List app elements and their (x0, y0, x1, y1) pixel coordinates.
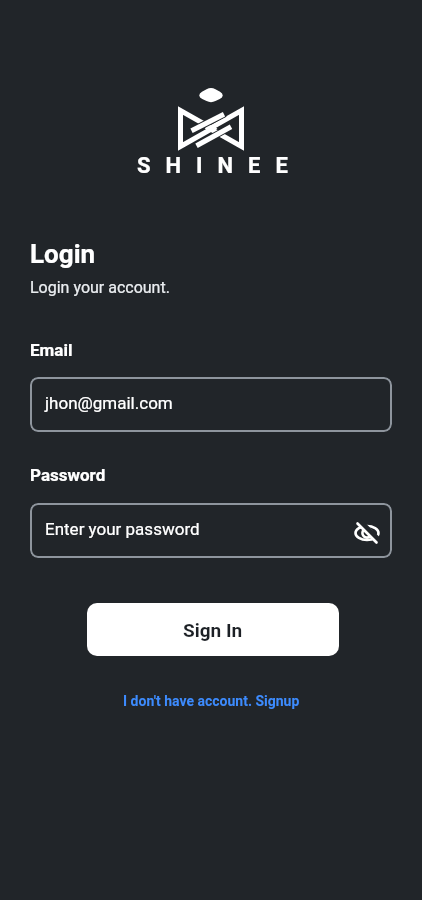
button[interactable]: jhon@gmail.com (30, 377, 392, 432)
staticText: Email (30, 340, 73, 360)
button[interactable]: I don't have account. Signup (123, 693, 300, 709)
staticText: Login your account. (30, 278, 170, 297)
button[interactable]: Sign In (87, 603, 339, 656)
staticText: jhon@gmail.com (45, 393, 173, 413)
button[interactable]: Enter your password (30, 503, 392, 558)
staticText: I don't have account. Signup (123, 693, 300, 709)
staticText: Password (30, 465, 106, 485)
staticText: Login (30, 239, 96, 269)
staticText: Sign In (183, 619, 243, 641)
staticText: SHINEE (137, 153, 303, 179)
staticText: Enter your password (45, 519, 200, 539)
